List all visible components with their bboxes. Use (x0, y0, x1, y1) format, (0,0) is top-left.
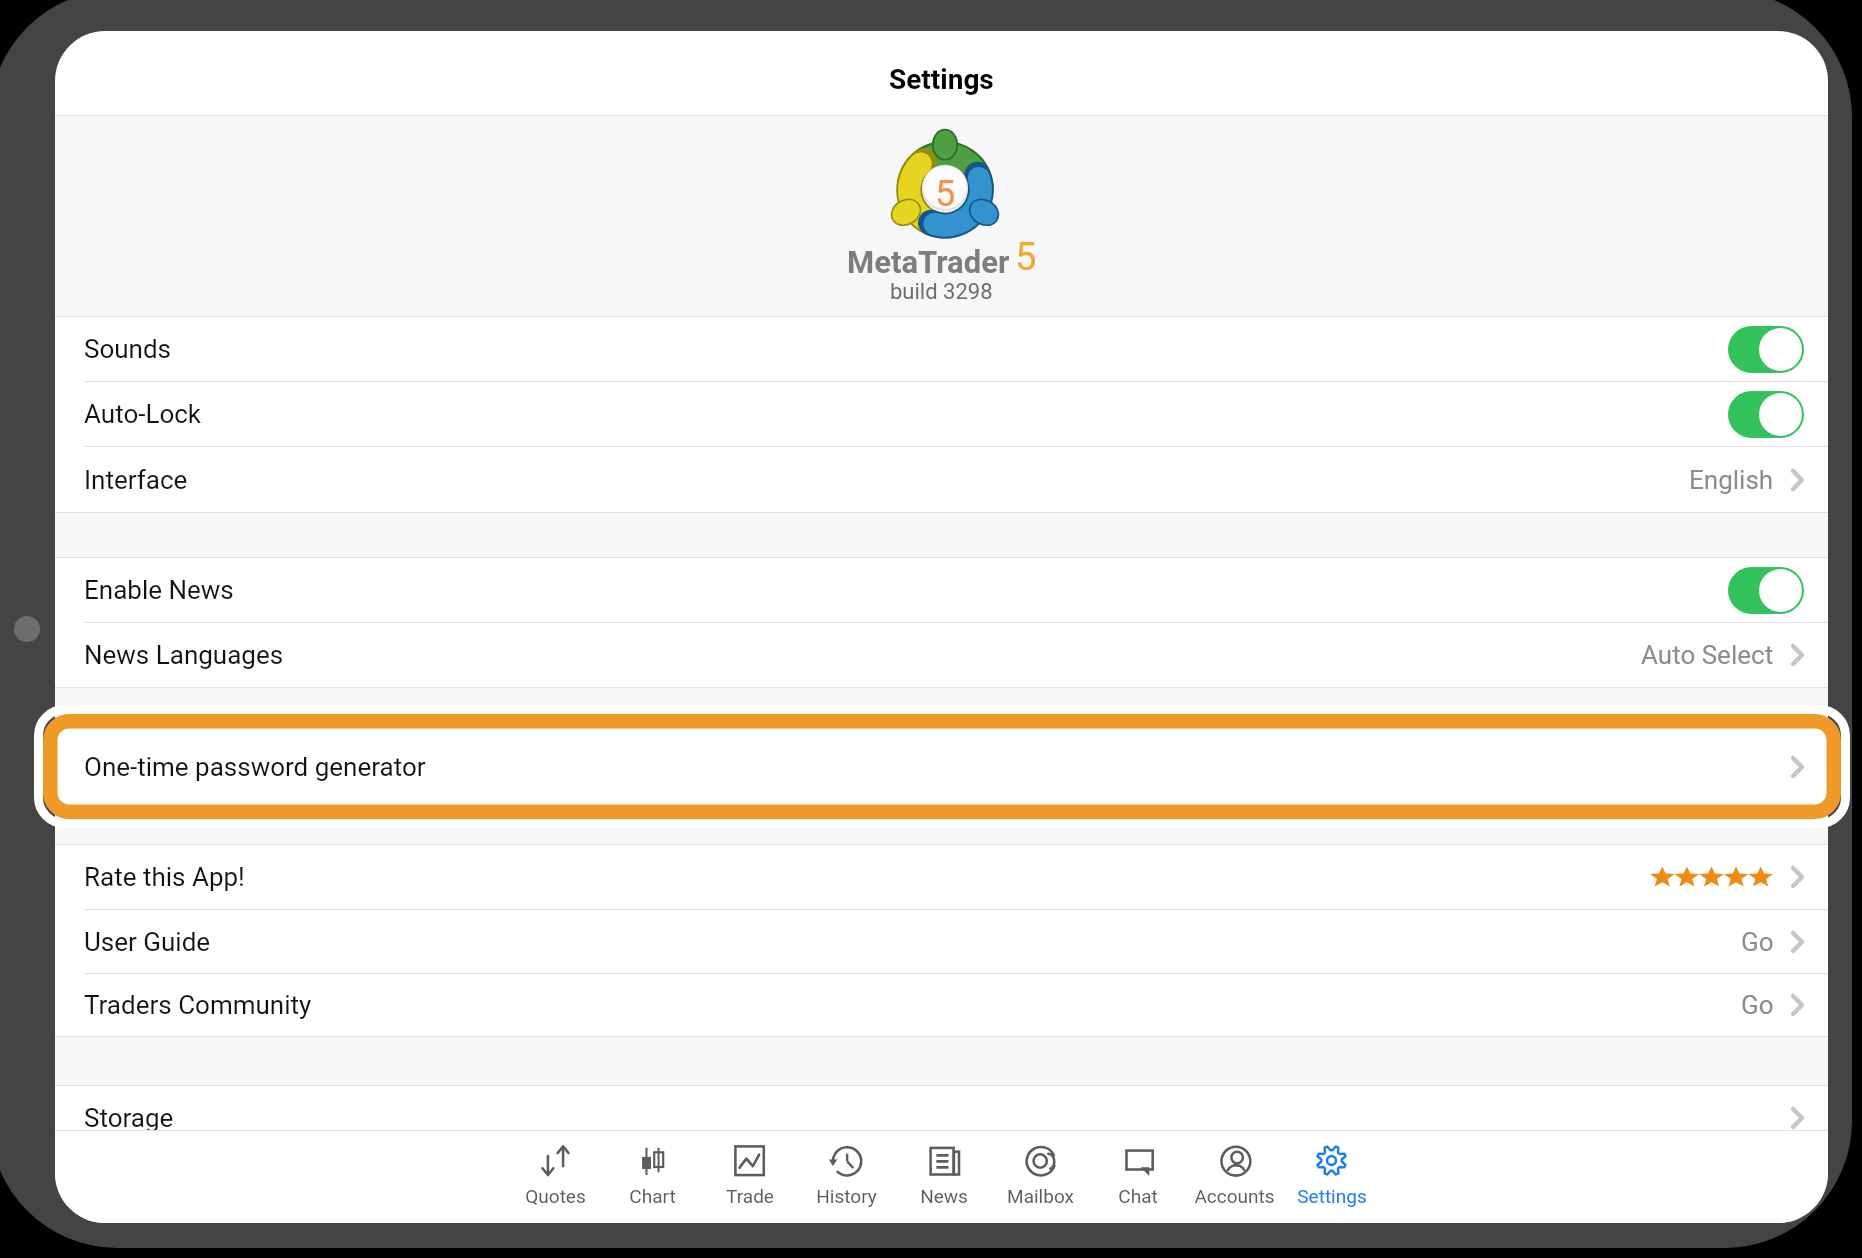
staticText: Settings (1297, 1185, 1367, 1207)
staticText: History (816, 1185, 877, 1207)
button[interactable]: Rate this App! (55, 845, 1828, 909)
button[interactable]: News (895, 1131, 992, 1223)
staticText: Traders Community (84, 990, 312, 1020)
staticText: English (1689, 465, 1774, 495)
button[interactable]: Toggle on (1728, 391, 1804, 438)
staticText: Auto Select (1641, 640, 1774, 670)
button[interactable]: Storage (55, 1086, 1828, 1150)
button[interactable]: One-time password generator (55, 729, 1828, 805)
button[interactable]: Settings (1283, 1131, 1380, 1223)
staticText: Enable News (84, 575, 234, 605)
staticText: Chat (1118, 1185, 1158, 1207)
staticText: Settings (889, 63, 994, 96)
staticText: 5 (1015, 235, 1037, 280)
staticText: Storage (84, 1103, 174, 1133)
button[interactable]: Mailbox (992, 1131, 1089, 1223)
button[interactable]: Auto-Lock (55, 382, 1828, 446)
button[interactable]: Toggle on (1728, 326, 1804, 373)
staticText: MetaTrader (847, 244, 1010, 280)
staticText: build 3298 (890, 279, 993, 305)
button[interactable]: History (798, 1131, 895, 1223)
button[interactable]: Chat (1089, 1131, 1186, 1223)
staticText: Chart (629, 1185, 676, 1207)
staticText: Go (1741, 927, 1774, 957)
staticText: Mailbox (1007, 1185, 1074, 1207)
staticText: 5 (935, 173, 956, 215)
staticText: Trade (726, 1185, 774, 1207)
button[interactable]: Enable News (55, 558, 1828, 622)
button[interactable]: Sounds (55, 317, 1828, 381)
button[interactable]: Quotes (507, 1131, 604, 1223)
button[interactable]: Traders Community (55, 974, 1828, 1036)
staticText: News (920, 1185, 968, 1207)
button[interactable]: News Languages (55, 623, 1828, 687)
button[interactable]: Trade (701, 1131, 798, 1223)
button[interactable]: Toggle on (1728, 567, 1804, 614)
staticText: Rate this App! (84, 862, 245, 892)
staticText: Accounts (1194, 1185, 1275, 1207)
staticText: One-time password generator (84, 752, 426, 782)
button[interactable]: Accounts (1186, 1131, 1283, 1223)
button[interactable]: Chart (604, 1131, 701, 1223)
staticText: Interface (84, 465, 188, 495)
staticText: News Languages (84, 640, 284, 670)
staticText: Quotes (525, 1185, 586, 1207)
staticText: Sounds (84, 334, 172, 364)
button[interactable]: User Guide (55, 910, 1828, 973)
staticText: Go (1741, 990, 1774, 1020)
other: One-time password generator highlighted (30, 701, 1854, 832)
staticText: User Guide (84, 927, 211, 957)
staticText: Auto-Lock (84, 399, 202, 429)
button[interactable]: Interface (55, 447, 1828, 512)
